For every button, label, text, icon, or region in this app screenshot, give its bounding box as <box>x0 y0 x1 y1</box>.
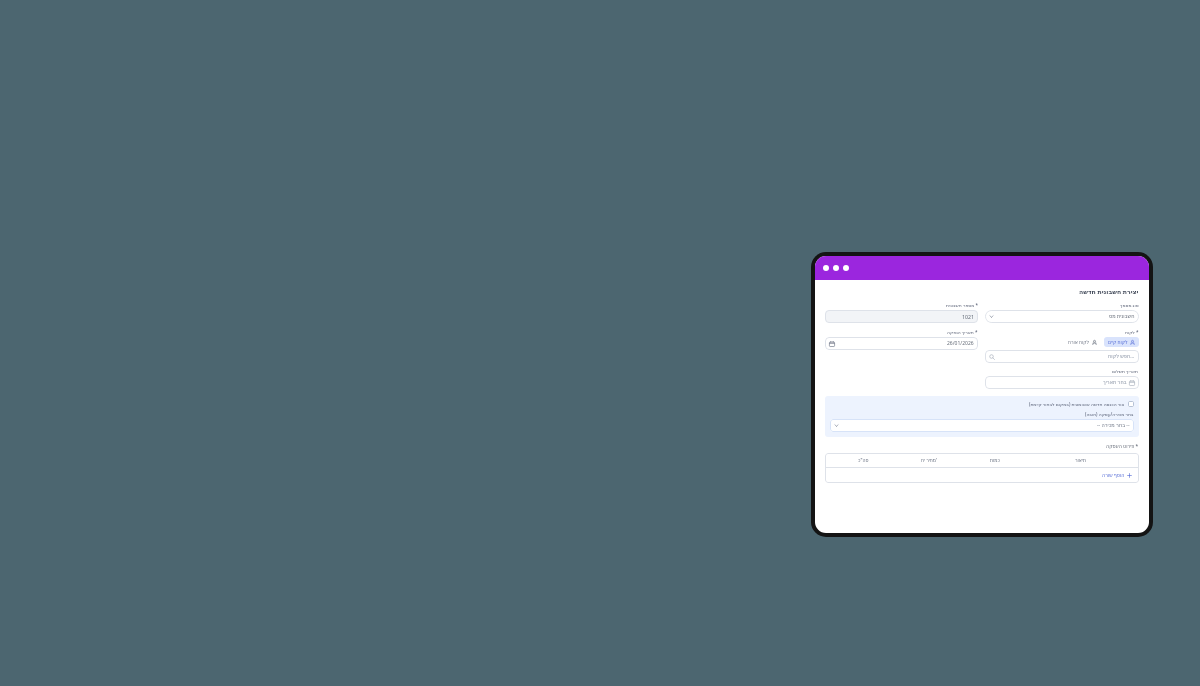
staticText: 26/01/2026 <box>947 340 974 347</box>
staticText: הוסף שורה <box>1102 472 1125 479</box>
button[interactable]: צור הכנסה חדשה אוטומטית (במקום לבחור קיי… <box>830 401 1134 407</box>
staticText: תאריך הנפקה * <box>947 329 978 335</box>
staticText: סה"כ <box>858 457 869 463</box>
button[interactable]: בחר תאריך <box>985 376 1139 389</box>
staticText: לקוח אורח <box>1068 339 1090 345</box>
staticText: תיאור <box>1075 458 1086 463</box>
button[interactable]: לקוח אורח <box>1065 337 1100 347</box>
staticText: תאריך תשלום <box>1112 368 1139 374</box>
staticText: סוג מסמך <box>1120 302 1139 308</box>
button[interactable]: 26/01/2026 <box>825 337 978 350</box>
other: צור הכנסה חדשה אוטומטית <box>1128 401 1134 407</box>
staticText: -- בחר מכירה -- <box>1097 422 1130 429</box>
button[interactable]: -- בחר מכירה -- <box>830 419 1134 432</box>
staticText: צור הכנסה חדשה אוטומטית (במקום לבחור קיי… <box>1029 401 1125 407</box>
staticText: כמות <box>990 458 1000 463</box>
button[interactable]: לקוח קיים <box>1104 337 1139 347</box>
staticText: חפש לקוח... <box>1108 353 1135 360</box>
staticText: לקוח * <box>1125 329 1139 335</box>
staticText: 1021 <box>962 313 974 320</box>
staticText: בחר מכירה/עסקה (חובה) <box>1085 411 1134 417</box>
button[interactable]: הוסף שורה <box>1101 471 1133 480</box>
button[interactable]: חשבונית מס <box>985 310 1139 323</box>
staticText: חשבונית מס <box>1109 313 1135 320</box>
staticText: מחיר יח' <box>921 457 938 463</box>
staticText: מספר חשבונית * <box>946 302 978 308</box>
staticText: בחר תאריך <box>1103 379 1127 386</box>
staticText: לקוח קיים <box>1108 339 1128 345</box>
button[interactable]: 1021 <box>825 310 978 323</box>
staticText: פירוט העסקה * <box>1106 443 1139 450</box>
button[interactable]: חפש לקוח... <box>985 350 1139 363</box>
staticText: יצירת חשבונית חדשה <box>1079 287 1139 295</box>
